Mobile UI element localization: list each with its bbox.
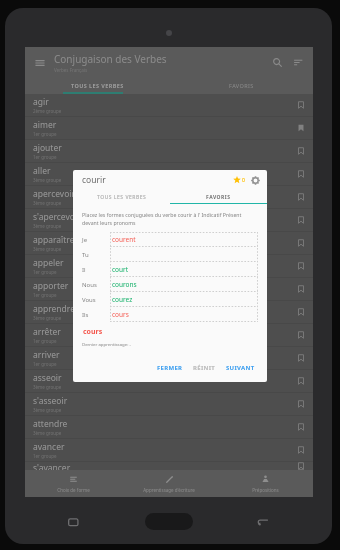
staticText: avancer bbox=[33, 441, 65, 453]
staticText: Verbes Français bbox=[54, 67, 88, 73]
staticText: Prépositions bbox=[252, 487, 279, 493]
staticText: Dernier apprentissage: - bbox=[82, 341, 131, 347]
staticText: apercevoir bbox=[33, 188, 75, 200]
button[interactable]: Apprentissage d'écriture bbox=[121, 470, 217, 497]
staticText: court bbox=[112, 265, 129, 274]
staticText: Je bbox=[82, 236, 110, 244]
staticText: cours bbox=[83, 327, 103, 337]
button[interactable]: apprendre bbox=[33, 301, 305, 323]
button[interactable]: Prépositions bbox=[217, 470, 313, 497]
staticText: 1er groupe bbox=[33, 361, 57, 367]
button[interactable]: FERMER bbox=[152, 361, 188, 375]
staticText: 3ème groupe bbox=[33, 407, 62, 413]
other: Back bbox=[256, 515, 270, 529]
button[interactable]: aller bbox=[33, 163, 305, 185]
staticText: apporter bbox=[33, 280, 69, 292]
staticText: 3ème groupe bbox=[33, 177, 62, 183]
staticText: devant leurs pronoms bbox=[82, 219, 136, 226]
staticText: 0 bbox=[242, 177, 245, 184]
button[interactable]: apercevoir bbox=[33, 186, 305, 208]
button[interactable]: SUIVANT bbox=[221, 361, 260, 375]
staticText: s'asseoir bbox=[33, 395, 68, 407]
staticText: cours bbox=[112, 310, 129, 319]
button[interactable]: Search bbox=[272, 57, 283, 68]
staticText: appeler bbox=[33, 257, 64, 269]
staticText: s'apercevoir bbox=[33, 211, 81, 223]
staticText: attendre bbox=[33, 418, 68, 430]
staticText: TOUS LES VERBES bbox=[97, 194, 147, 201]
button[interactable]: s'apercevoir bbox=[33, 209, 305, 231]
staticText: courons bbox=[112, 280, 137, 289]
button[interactable]: apporter bbox=[33, 278, 305, 300]
button[interactable]: asseoir bbox=[33, 370, 305, 392]
staticText: 3ème groupe bbox=[33, 200, 62, 206]
staticText: FAVORIS bbox=[229, 82, 254, 89]
staticText: Placez les formes conjuguées du verbe co… bbox=[82, 211, 242, 218]
staticText: arrêter bbox=[33, 326, 61, 338]
button[interactable]: ajouter bbox=[33, 140, 305, 162]
button[interactable]: avancer bbox=[33, 439, 305, 461]
staticText: aller bbox=[33, 165, 51, 177]
staticText: Vous bbox=[82, 296, 110, 304]
button[interactable]: Ils bbox=[82, 307, 258, 322]
staticText: courez bbox=[112, 295, 133, 304]
staticText: courent bbox=[112, 235, 136, 244]
staticText: 2ème groupe bbox=[33, 108, 62, 114]
button[interactable]: TOUS LES VERBES bbox=[25, 77, 169, 94]
button[interactable]: s'avancer bbox=[33, 462, 305, 470]
button[interactable]: Home bbox=[145, 513, 193, 530]
staticText: 1er groupe bbox=[33, 453, 57, 459]
staticText: courir bbox=[82, 174, 232, 186]
button[interactable]: FAVORIS bbox=[170, 190, 267, 204]
button[interactable]: Choix de forme bbox=[25, 470, 121, 497]
button[interactable]: Je bbox=[82, 232, 258, 247]
button[interactable]: Il bbox=[82, 262, 258, 277]
staticText: apparaître bbox=[33, 234, 75, 246]
staticText: 3ème groupe bbox=[33, 315, 62, 321]
staticText: ajouter bbox=[33, 142, 62, 154]
button[interactable]: arrêter bbox=[33, 324, 305, 346]
staticText: arriver bbox=[33, 349, 60, 361]
staticText: 1er groupe bbox=[33, 269, 57, 275]
staticText: s'avancer bbox=[33, 462, 71, 470]
button[interactable]: aimer bbox=[33, 117, 305, 139]
staticText: apprendre bbox=[33, 303, 75, 315]
button[interactable]: Tu bbox=[82, 247, 258, 262]
staticText: Nous bbox=[82, 281, 110, 289]
staticText: Ils bbox=[82, 311, 110, 319]
button[interactable]: cours bbox=[83, 327, 103, 337]
button[interactable]: arriver bbox=[33, 347, 305, 369]
button[interactable]: TOUS LES VERBES bbox=[73, 190, 170, 204]
button[interactable]: Sort bbox=[293, 57, 304, 68]
staticText: 1er groupe bbox=[33, 154, 57, 160]
staticText: Tu bbox=[82, 251, 110, 259]
staticText: 3ème groupe bbox=[33, 246, 62, 252]
staticText: asseoir bbox=[33, 372, 62, 384]
staticText: SUIVANT bbox=[226, 364, 255, 372]
staticText: FERMER bbox=[157, 364, 183, 372]
button[interactable]: Menu bbox=[34, 57, 46, 69]
staticText: agir bbox=[33, 96, 49, 108]
staticText: Conjugaison des Verbes bbox=[54, 52, 167, 66]
button[interactable]: s'asseoir bbox=[33, 393, 305, 415]
button[interactable]: agir bbox=[33, 94, 305, 116]
button[interactable]: Nous bbox=[82, 277, 258, 292]
staticText: 3ème groupe bbox=[33, 223, 62, 229]
staticText: FAVORIS bbox=[206, 194, 231, 201]
staticText: 3ème groupe bbox=[33, 384, 62, 390]
button[interactable]: Settings bbox=[251, 176, 260, 185]
button[interactable]: appeler bbox=[33, 255, 305, 277]
button[interactable]: Vous bbox=[82, 292, 258, 307]
staticText: 1er groupe bbox=[33, 338, 57, 344]
button[interactable]: FAVORIS bbox=[169, 77, 313, 94]
staticText: 1er groupe bbox=[33, 131, 57, 137]
staticText: aimer bbox=[33, 119, 57, 131]
staticText: 3ème groupe bbox=[33, 430, 62, 436]
staticText: Il bbox=[82, 266, 110, 274]
staticText: RÉINIT bbox=[193, 364, 216, 372]
button[interactable]: Favorite bbox=[232, 176, 246, 184]
button[interactable]: attendre bbox=[33, 416, 305, 438]
button[interactable]: RÉINIT bbox=[188, 361, 221, 375]
staticText: 1er groupe bbox=[33, 292, 57, 298]
button[interactable]: apparaître bbox=[33, 232, 305, 254]
